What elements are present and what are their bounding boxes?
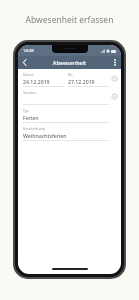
- button[interactable]: Bis: [68, 72, 109, 87]
- staticText: 14:29: [23, 48, 34, 54]
- staticText: 27.12.2019: [68, 78, 109, 85]
- staticText: Bis: [68, 72, 109, 77]
- button[interactable]: Typ: [23, 108, 109, 123]
- button[interactable]: Datum wählen: [111, 75, 118, 82]
- button[interactable]: Stunden wählen: [111, 93, 118, 100]
- staticText: Ferien: [23, 114, 109, 121]
- staticText: Stunden: [23, 90, 109, 95]
- button[interactable]: Zurück: [18, 56, 31, 69]
- staticText: Typ: [23, 108, 109, 113]
- staticText: Abwesenheit: [18, 59, 121, 66]
- staticText: Abwesenheit erfassen: [0, 14, 139, 26]
- staticText: Datum: [23, 72, 64, 77]
- button[interactable]: Menü: [108, 56, 121, 69]
- button[interactable]: Stunden: [23, 90, 109, 105]
- button[interactable]: Datum: [23, 72, 64, 87]
- staticText: Beschreibung: [23, 126, 109, 131]
- staticText: Weihnachtsferien: [23, 132, 109, 139]
- staticText: 24.12.2019: [23, 78, 64, 85]
- button[interactable]: Beschreibung: [23, 126, 109, 141]
